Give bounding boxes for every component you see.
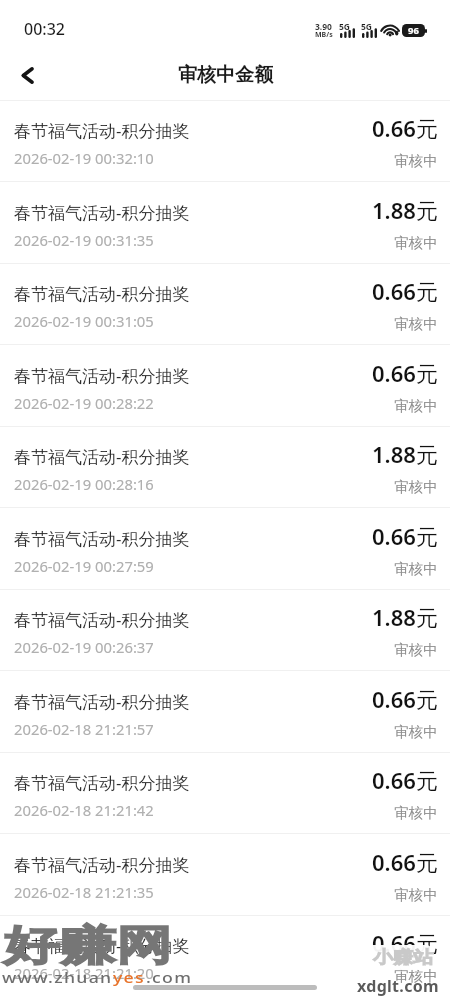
staticText: 春节福气活动-积分抽奖 bbox=[14, 771, 190, 794]
button[interactable]: 春节福气活动-积分抽奖 bbox=[0, 263, 450, 345]
staticText: 审核中 bbox=[394, 152, 438, 170]
staticText: 元 bbox=[416, 442, 438, 470]
staticText: 审核中 bbox=[394, 315, 438, 333]
staticText: 元 bbox=[416, 605, 438, 633]
staticText: 5G bbox=[361, 21, 373, 33]
staticText: 0.66 bbox=[372, 358, 416, 388]
staticText: yes bbox=[113, 967, 146, 987]
staticText: 审核中 bbox=[394, 397, 438, 415]
button[interactable]: 春节福气活动-积分抽奖 bbox=[0, 834, 450, 916]
staticText: 春节福气活动-积分抽奖 bbox=[14, 282, 190, 305]
staticText: 元 bbox=[416, 198, 438, 226]
staticText: 2026-02-19 00:31:35 bbox=[14, 230, 154, 250]
staticText: 2026-02-19 00:26:37 bbox=[14, 637, 154, 657]
staticText: 元 bbox=[416, 931, 438, 959]
button[interactable]: 春节福气活动-积分抽奖 bbox=[0, 345, 450, 427]
staticText: 小赚站 bbox=[373, 947, 433, 969]
staticText: 2026-02-19 00:28:22 bbox=[14, 393, 154, 413]
staticText: xdglt.com bbox=[357, 975, 439, 997]
button[interactable]: 春节福气活动-积分抽奖 bbox=[0, 752, 450, 834]
button[interactable]: 春节福气活动-积分抽奖 bbox=[0, 671, 450, 753]
staticText: 5G bbox=[339, 21, 351, 33]
staticText: 审核中 bbox=[394, 723, 438, 741]
staticText: 审核中金额 bbox=[178, 63, 273, 87]
staticText: 元 bbox=[416, 687, 438, 715]
staticText: 审核中 bbox=[394, 886, 438, 904]
staticText: 0.66 bbox=[372, 276, 416, 306]
button[interactable]: 春节福气活动-积分抽奖 bbox=[0, 100, 450, 182]
staticText: 3.90 bbox=[315, 21, 332, 33]
staticText: 1.88 bbox=[372, 195, 416, 225]
staticText: 审核中 bbox=[394, 804, 438, 822]
staticText: 2026-02-19 00:32:10 bbox=[14, 148, 154, 168]
staticText: 0.66 bbox=[372, 521, 416, 551]
staticText: 审核中 bbox=[394, 478, 438, 496]
staticText: 审核中 bbox=[394, 641, 438, 659]
button[interactable]: 春节福气活动-积分抽奖 bbox=[0, 915, 450, 997]
staticText: 2026-02-18 21:21:57 bbox=[14, 719, 154, 739]
staticText: 2026-02-19 00:28:16 bbox=[14, 474, 154, 494]
staticText: 0.66 bbox=[372, 847, 416, 877]
staticText: 春节福气活动-积分抽奖 bbox=[14, 364, 190, 387]
staticText: 春节福气活动-积分抽奖 bbox=[14, 853, 190, 876]
button[interactable]: 春节福气活动-积分抽奖 bbox=[0, 182, 450, 264]
staticText: 好赚网 bbox=[3, 920, 172, 973]
staticText: 2026-02-19 00:31:05 bbox=[14, 311, 154, 331]
staticText: 审核中 bbox=[394, 967, 438, 985]
staticText: 春节福气活动-积分抽奖 bbox=[14, 934, 190, 957]
staticText: 2026-02-18 21:21:42 bbox=[14, 800, 154, 820]
staticText: 96 bbox=[408, 24, 419, 37]
staticText: 春节福气活动-积分抽奖 bbox=[14, 119, 190, 142]
staticText: 审核中 bbox=[394, 560, 438, 578]
staticText: 春节福气活动-积分抽奖 bbox=[14, 527, 190, 550]
button[interactable]: 春节福气活动-积分抽奖 bbox=[0, 508, 450, 590]
staticText: 2026-02-18 21:21:35 bbox=[14, 882, 154, 902]
staticText: 00:32 bbox=[24, 18, 65, 40]
staticText: 元 bbox=[416, 524, 438, 552]
staticText: 1.88 bbox=[372, 602, 416, 632]
staticText: .com bbox=[146, 967, 193, 987]
staticText: 1.88 bbox=[372, 439, 416, 469]
button[interactable]: Back bbox=[3, 51, 51, 99]
staticText: 2026-02-19 00:27:59 bbox=[14, 556, 154, 576]
button[interactable]: 春节福气活动-积分抽奖 bbox=[0, 589, 450, 671]
staticText: 元 bbox=[416, 768, 438, 796]
staticText: 2026-02-18 21:21:20 bbox=[14, 963, 154, 983]
staticText: 春节福气活动-积分抽奖 bbox=[14, 608, 190, 631]
staticText: 春节福气活动-积分抽奖 bbox=[14, 201, 190, 224]
staticText: 春节福气活动-积分抽奖 bbox=[14, 690, 190, 713]
staticText: 0.66 bbox=[372, 684, 416, 714]
staticText: 审核中 bbox=[394, 234, 438, 252]
staticText: 0.66 bbox=[372, 765, 416, 795]
staticText: 元 bbox=[416, 279, 438, 307]
staticText: www.zhuan bbox=[2, 967, 113, 987]
staticText: 元 bbox=[416, 850, 438, 878]
staticText: 元 bbox=[416, 116, 438, 144]
staticText: 春节福气活动-积分抽奖 bbox=[14, 445, 190, 468]
staticText: MB/s bbox=[315, 30, 333, 40]
staticText: 0.66 bbox=[372, 928, 416, 958]
staticText: 元 bbox=[416, 361, 438, 389]
button[interactable]: 春节福气活动-积分抽奖 bbox=[0, 426, 450, 508]
staticText: 0.66 bbox=[372, 113, 416, 143]
